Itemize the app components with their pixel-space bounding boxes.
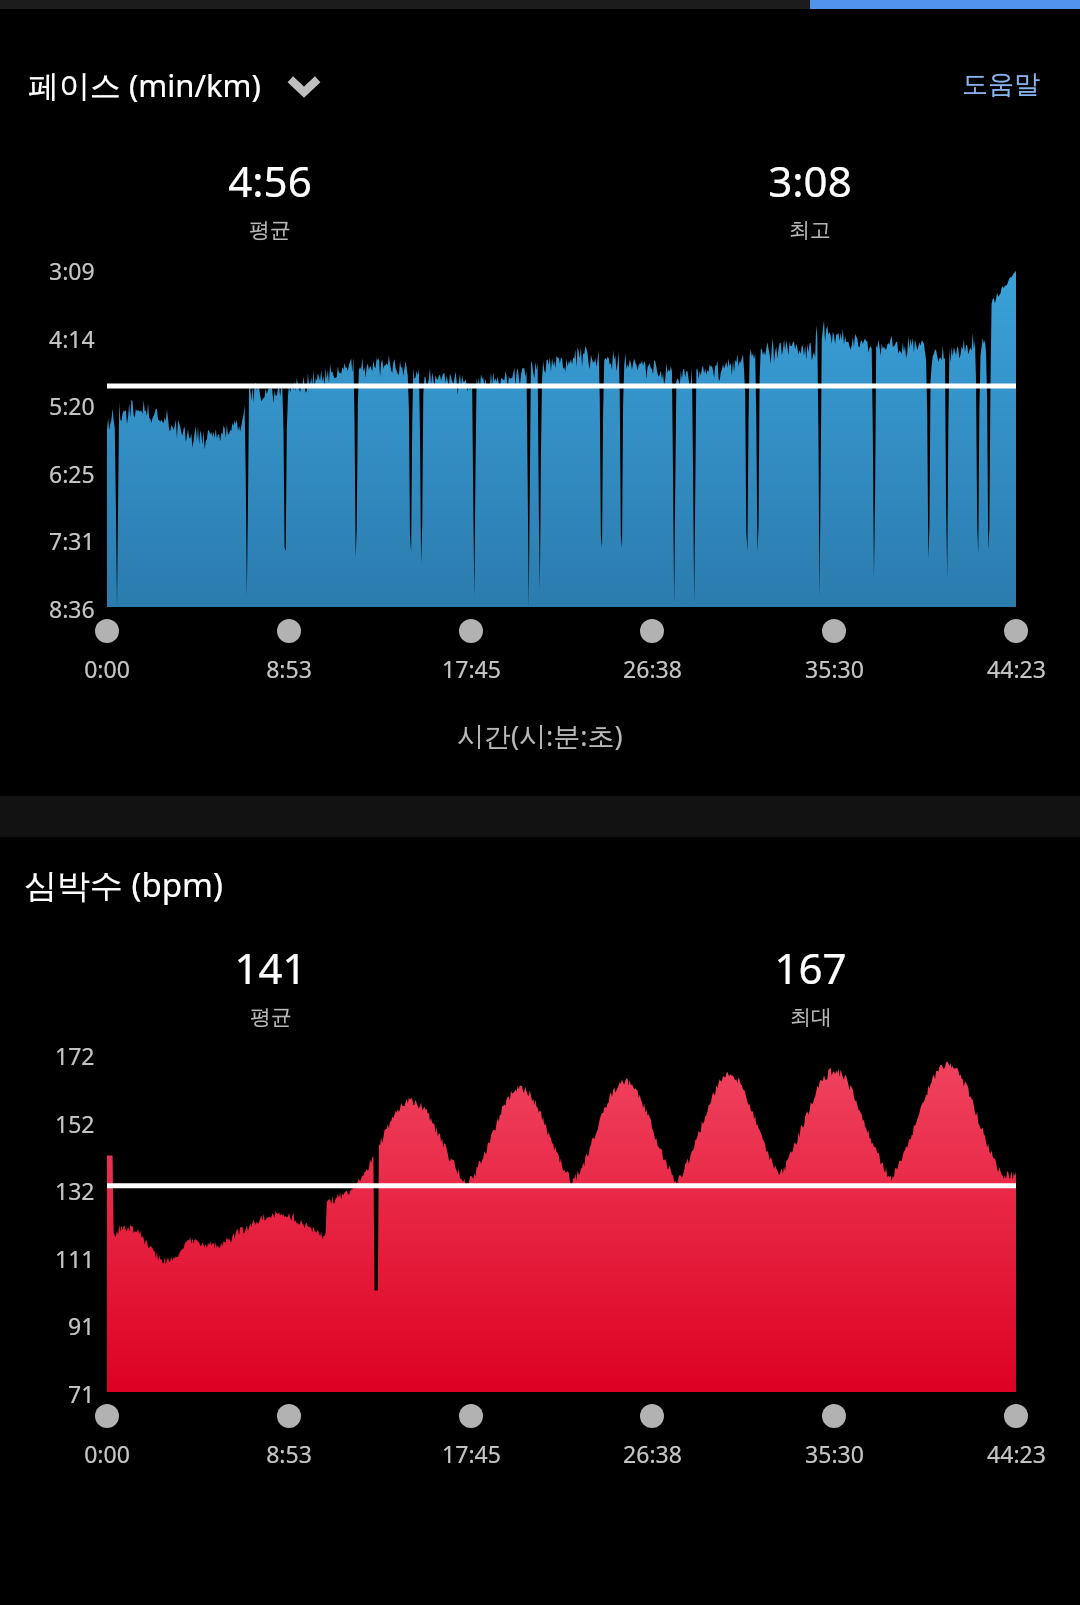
staticText: 6:25 — [49, 458, 95, 489]
staticText: 최대 — [790, 1004, 832, 1030]
staticText: 132 — [55, 1175, 95, 1206]
staticText: 0:00 — [84, 653, 130, 684]
staticText: 최고 — [789, 217, 831, 243]
staticText: 8:36 — [49, 593, 95, 624]
staticText: 7:31 — [49, 525, 95, 556]
staticText: 8:53 — [266, 653, 312, 684]
staticText: 91 — [68, 1310, 95, 1341]
button[interactable]: 도움말 — [952, 58, 1050, 111]
staticText: 8:53 — [266, 1438, 312, 1469]
button[interactable]: 심박수 (bpm) — [0, 862, 1080, 907]
staticText: 4:14 — [49, 323, 95, 354]
staticText: 4:56 — [228, 152, 312, 209]
staticText: 167 — [774, 939, 847, 996]
staticText: 26:38 — [623, 653, 682, 684]
staticText: 111 — [55, 1243, 95, 1274]
staticText: 평균 — [249, 217, 291, 243]
staticText: 도움말 — [962, 68, 1040, 101]
staticText: 시간(시:분:초) — [457, 717, 623, 754]
staticText: 페이스 (min/km) — [28, 64, 261, 106]
staticText: 5:20 — [49, 390, 95, 421]
staticText: 평균 — [250, 1004, 292, 1030]
staticText: 17:45 — [442, 1438, 501, 1469]
staticText: 35:30 — [805, 1438, 864, 1469]
staticText: 26:38 — [623, 1438, 682, 1469]
staticText: 44:23 — [987, 653, 1046, 684]
staticText: 44:23 — [987, 1438, 1046, 1469]
staticText: 3:09 — [49, 255, 95, 286]
staticText: 심박수 (bpm) — [24, 862, 223, 907]
staticText: 71 — [68, 1378, 95, 1409]
staticText: 172 — [55, 1040, 95, 1071]
staticText: 152 — [55, 1108, 95, 1139]
other: Change metric — [281, 62, 327, 108]
staticText: 35:30 — [805, 653, 864, 684]
button[interactable]: 페이스 (min/km) — [28, 62, 327, 108]
staticText: 141 — [234, 939, 307, 996]
staticText: 17:45 — [442, 653, 501, 684]
staticText: 0:00 — [84, 1438, 130, 1469]
staticText: 3:08 — [768, 152, 852, 209]
